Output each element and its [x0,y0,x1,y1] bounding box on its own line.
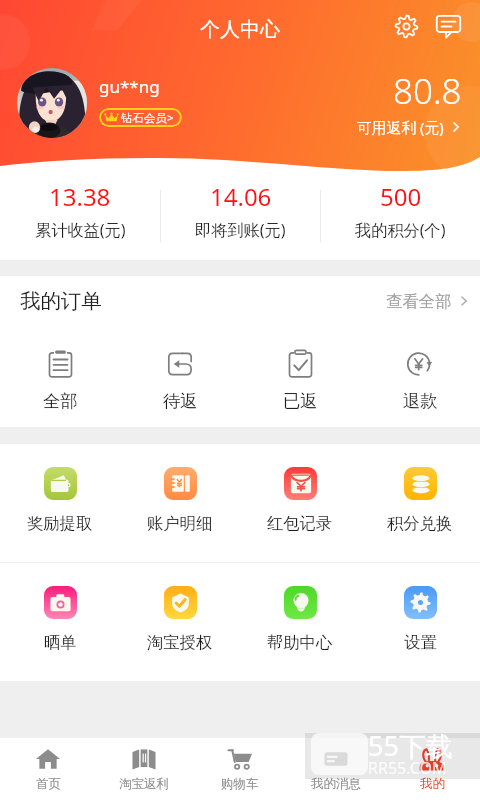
staticText: 即将到账(元) [195,219,286,241]
staticText: 我的积分(个) [355,219,446,241]
staticText: 500 [380,180,422,213]
button[interactable]: 首页 [0,738,96,800]
button[interactable]: 我的订单 [20,276,470,326]
staticText: 淘宝返利 [119,776,169,792]
button[interactable]: 已返 [240,326,360,427]
staticText: 80.8 [393,67,462,115]
staticText: 13.38 [49,180,111,213]
button[interactable]: 晒单 [0,563,120,681]
button[interactable]: 帮助中心 [240,563,360,681]
button[interactable]: 待返 [120,326,240,427]
button[interactable]: 账户明细 [120,444,240,562]
button[interactable]: 淘宝返利 [96,738,192,800]
staticText: 红包记录 [267,513,333,534]
staticText: 帮助中心 [267,632,333,653]
button[interactable]: Profile photo [17,68,87,138]
staticText: 查看全部 [386,291,452,312]
staticText: 14.06 [210,180,272,213]
button[interactable]: 80.8 [357,67,462,137]
button[interactable]: 设置 [360,563,480,681]
staticText: 我的消息 [311,776,361,792]
staticText: 可用返利 (元) [357,117,444,137]
staticText: 奖励提取 [27,513,93,534]
staticText: 钻石会员> [121,110,174,126]
button[interactable]: 淘宝授权 [120,563,240,681]
staticText: 首页 [36,776,61,792]
button[interactable]: Settings [385,5,427,47]
button[interactable]: 奖励提取 [0,444,120,562]
button[interactable]: 500 [321,172,480,260]
staticText: 累计收益(元) [35,219,126,241]
staticText: 设置 [404,632,437,653]
staticText: 晒单 [44,632,77,653]
button[interactable]: 13.38 [0,172,160,260]
staticText: 购物车 [221,776,259,792]
staticText: RR55.COM [368,757,447,779]
staticText: 已返 [283,390,318,412]
button[interactable]: 钻石会员> [105,108,174,127]
staticText: 我的 [420,776,445,792]
button[interactable]: 全部 [0,326,120,427]
button[interactable]: 退款 [360,326,480,427]
staticText: 账户明细 [147,513,213,534]
staticText: 积分兑换 [387,513,453,534]
staticText: 待返 [163,390,198,412]
staticText: 退款 [403,390,438,412]
staticText: 55下载 [368,727,453,764]
staticText: gu**ng [99,75,160,98]
button[interactable]: 我的消息 [288,738,384,800]
staticText: 我的订单 [20,288,102,314]
staticText: 个人中心 [200,17,280,42]
button[interactable]: 14.06 [161,172,320,260]
button[interactable]: 购物车 [192,738,288,800]
button[interactable]: 红包记录 [240,444,360,562]
staticText: 淘宝授权 [147,632,213,653]
button[interactable]: 积分兑换 [360,444,480,562]
staticText: 全部 [43,390,78,412]
button[interactable]: 我的 [384,738,480,800]
button[interactable]: Messages [427,5,469,47]
